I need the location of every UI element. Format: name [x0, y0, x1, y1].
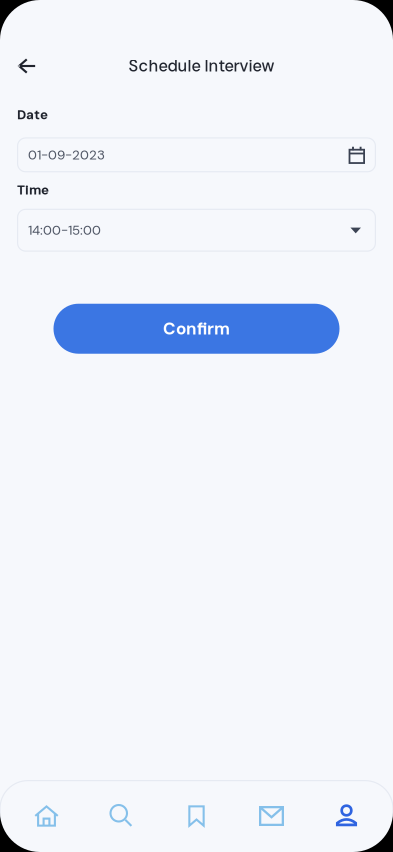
staticText: Time — [17, 181, 49, 199]
staticText: 14:00-15:00 — [28, 221, 101, 239]
button[interactable]: Home — [9, 787, 84, 845]
button[interactable]: 01-09-2023 — [17, 137, 376, 172]
staticText: Schedule Interview — [128, 55, 274, 77]
button[interactable]: Confirm — [53, 304, 339, 354]
button[interactable]: Search — [84, 787, 159, 845]
staticText: 01-09-2023 — [28, 146, 105, 164]
button[interactable]: Back — [5, 44, 49, 88]
button[interactable]: 14:00-15:00 — [17, 209, 376, 252]
staticText: Confirm — [163, 318, 230, 340]
button[interactable]: Messages — [234, 787, 309, 845]
staticText: Date — [17, 106, 48, 123]
button[interactable]: Profile — [309, 787, 384, 845]
button[interactable]: Saved — [159, 787, 234, 845]
